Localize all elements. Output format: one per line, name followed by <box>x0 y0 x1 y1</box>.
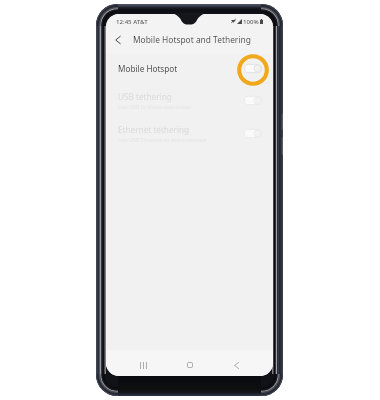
staticText: Use USB Ethernet to share connect <box>118 136 207 143</box>
staticText: Mobile Hotspot and Tethering <box>133 34 251 45</box>
button[interactable]: Toggle Ethernet tethering <box>244 129 262 138</box>
button[interactable]: Recents <box>120 352 167 376</box>
staticText: Mobile Hotspot <box>118 63 178 74</box>
staticText: USB tethering <box>118 91 172 102</box>
button[interactable]: Ethernet tethering <box>106 117 273 149</box>
staticText: 12:45 AT&T <box>116 17 148 25</box>
staticText: Use USB to share connection <box>118 103 191 110</box>
staticText: Ethernet tethering <box>118 124 190 135</box>
button[interactable]: Mobile Hotspot <box>106 52 273 84</box>
button[interactable]: Home <box>167 352 213 376</box>
button[interactable]: Back <box>106 28 129 51</box>
staticText: 100% <box>243 17 259 25</box>
button[interactable]: Toggle USB tethering <box>244 96 262 105</box>
button[interactable]: USB tethering <box>106 84 273 116</box>
button[interactable]: Back <box>213 352 259 376</box>
button[interactable]: Toggle Mobile Hotspot <box>244 64 262 73</box>
